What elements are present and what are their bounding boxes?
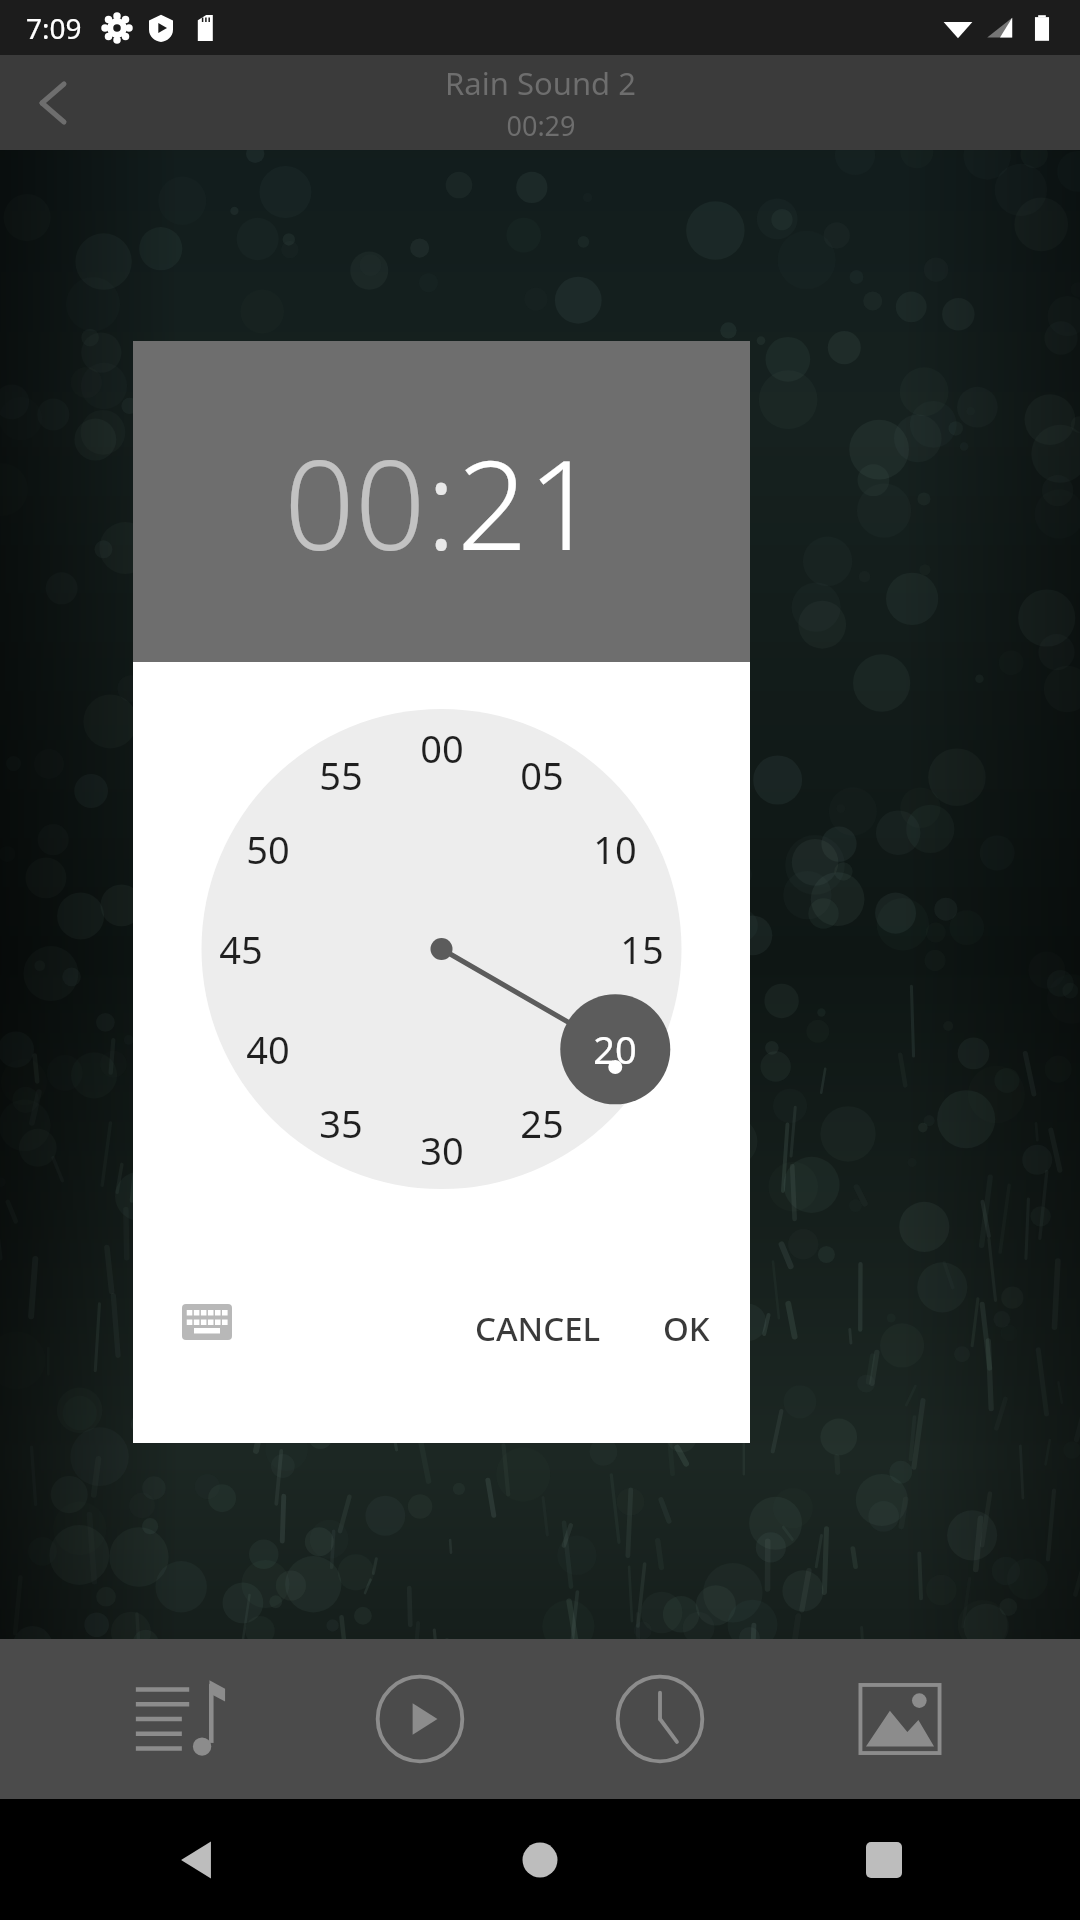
button[interactable]: Recent apps (838, 1814, 930, 1906)
button[interactable] (133, 662, 750, 1282)
staticText: 55 (319, 749, 363, 801)
button[interactable]: Back (150, 1814, 242, 1906)
staticText: OK (663, 1306, 710, 1351)
staticText: 00:29 (506, 107, 576, 144)
staticText: 30 (420, 1124, 464, 1176)
button[interactable]: Play (360, 1659, 480, 1779)
button[interactable]: 00 (133, 341, 750, 662)
button[interactable]: Background image (840, 1659, 960, 1779)
staticText: 05 (520, 749, 564, 801)
staticText: 40 (246, 1023, 290, 1075)
staticText: CANCEL (475, 1306, 601, 1351)
staticText: Rain Sound 2 (445, 62, 636, 104)
staticText: 35 (319, 1097, 363, 1149)
button[interactable]: Home (494, 1814, 586, 1906)
staticText: 10 (593, 823, 637, 875)
staticText: 20 (593, 1023, 637, 1075)
button[interactable]: CANCEL (455, 1286, 621, 1371)
button[interactable]: OK (643, 1286, 730, 1371)
staticText: 21 (457, 417, 599, 586)
button[interactable]: Back (16, 65, 92, 141)
staticText: 00 (284, 417, 426, 586)
button[interactable]: Timer (600, 1659, 720, 1779)
staticText: : (426, 417, 457, 586)
button[interactable]: Playlist (120, 1659, 240, 1779)
staticText: 00 (420, 722, 464, 774)
staticText: 50 (246, 823, 290, 875)
staticText: 25 (520, 1097, 564, 1149)
staticText: 15 (620, 923, 664, 975)
staticText: 45 (219, 923, 263, 975)
staticText: 7:09 (26, 9, 82, 47)
button[interactable]: Switch to text input (173, 1288, 241, 1356)
